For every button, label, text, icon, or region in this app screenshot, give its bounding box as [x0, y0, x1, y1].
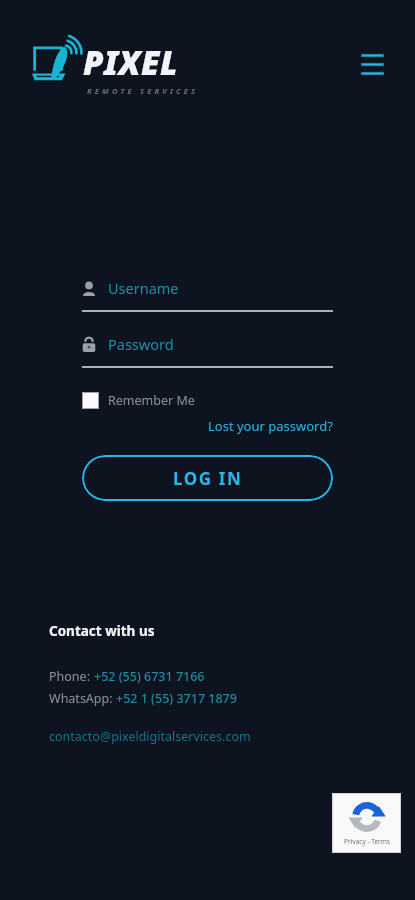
- staticText: Phone:: [49, 668, 94, 685]
- button[interactable]: contacto@pixeldigitalservices.com: [49, 728, 251, 745]
- button[interactable]: Remember Me: [82, 390, 195, 411]
- staticText: REMOTE SERVICES: [87, 86, 199, 96]
- staticText: PIXEL: [83, 40, 178, 85]
- staticText: Contact with us: [49, 622, 155, 640]
- staticText: +52 (55) 6731 7166: [94, 668, 205, 685]
- staticText: Password: [108, 334, 174, 354]
- staticText: WhatsApp:: [49, 690, 116, 707]
- staticText: Username: [108, 278, 179, 298]
- button[interactable]: Username: [82, 278, 333, 298]
- button[interactable]: WhatsApp:: [49, 690, 237, 707]
- button[interactable]: reCAPTCHA privacy and terms: [332, 793, 401, 853]
- button[interactable]: Lost your password?: [82, 417, 333, 435]
- button[interactable]: Password: [82, 334, 333, 354]
- button[interactable]: Open menu: [354, 46, 390, 82]
- staticText: +52 1 (55) 3717 1879: [116, 690, 237, 707]
- staticText: Privacy - Terms: [344, 837, 390, 846]
- button[interactable]: LOG IN: [82, 455, 333, 501]
- button[interactable]: Phone:: [49, 668, 205, 685]
- staticText: LOG IN: [173, 467, 243, 490]
- button[interactable]: Pixel Remote Services home: [32, 40, 195, 96]
- staticText: Remember Me: [108, 392, 195, 409]
- staticText: Lost your password?: [208, 417, 333, 435]
